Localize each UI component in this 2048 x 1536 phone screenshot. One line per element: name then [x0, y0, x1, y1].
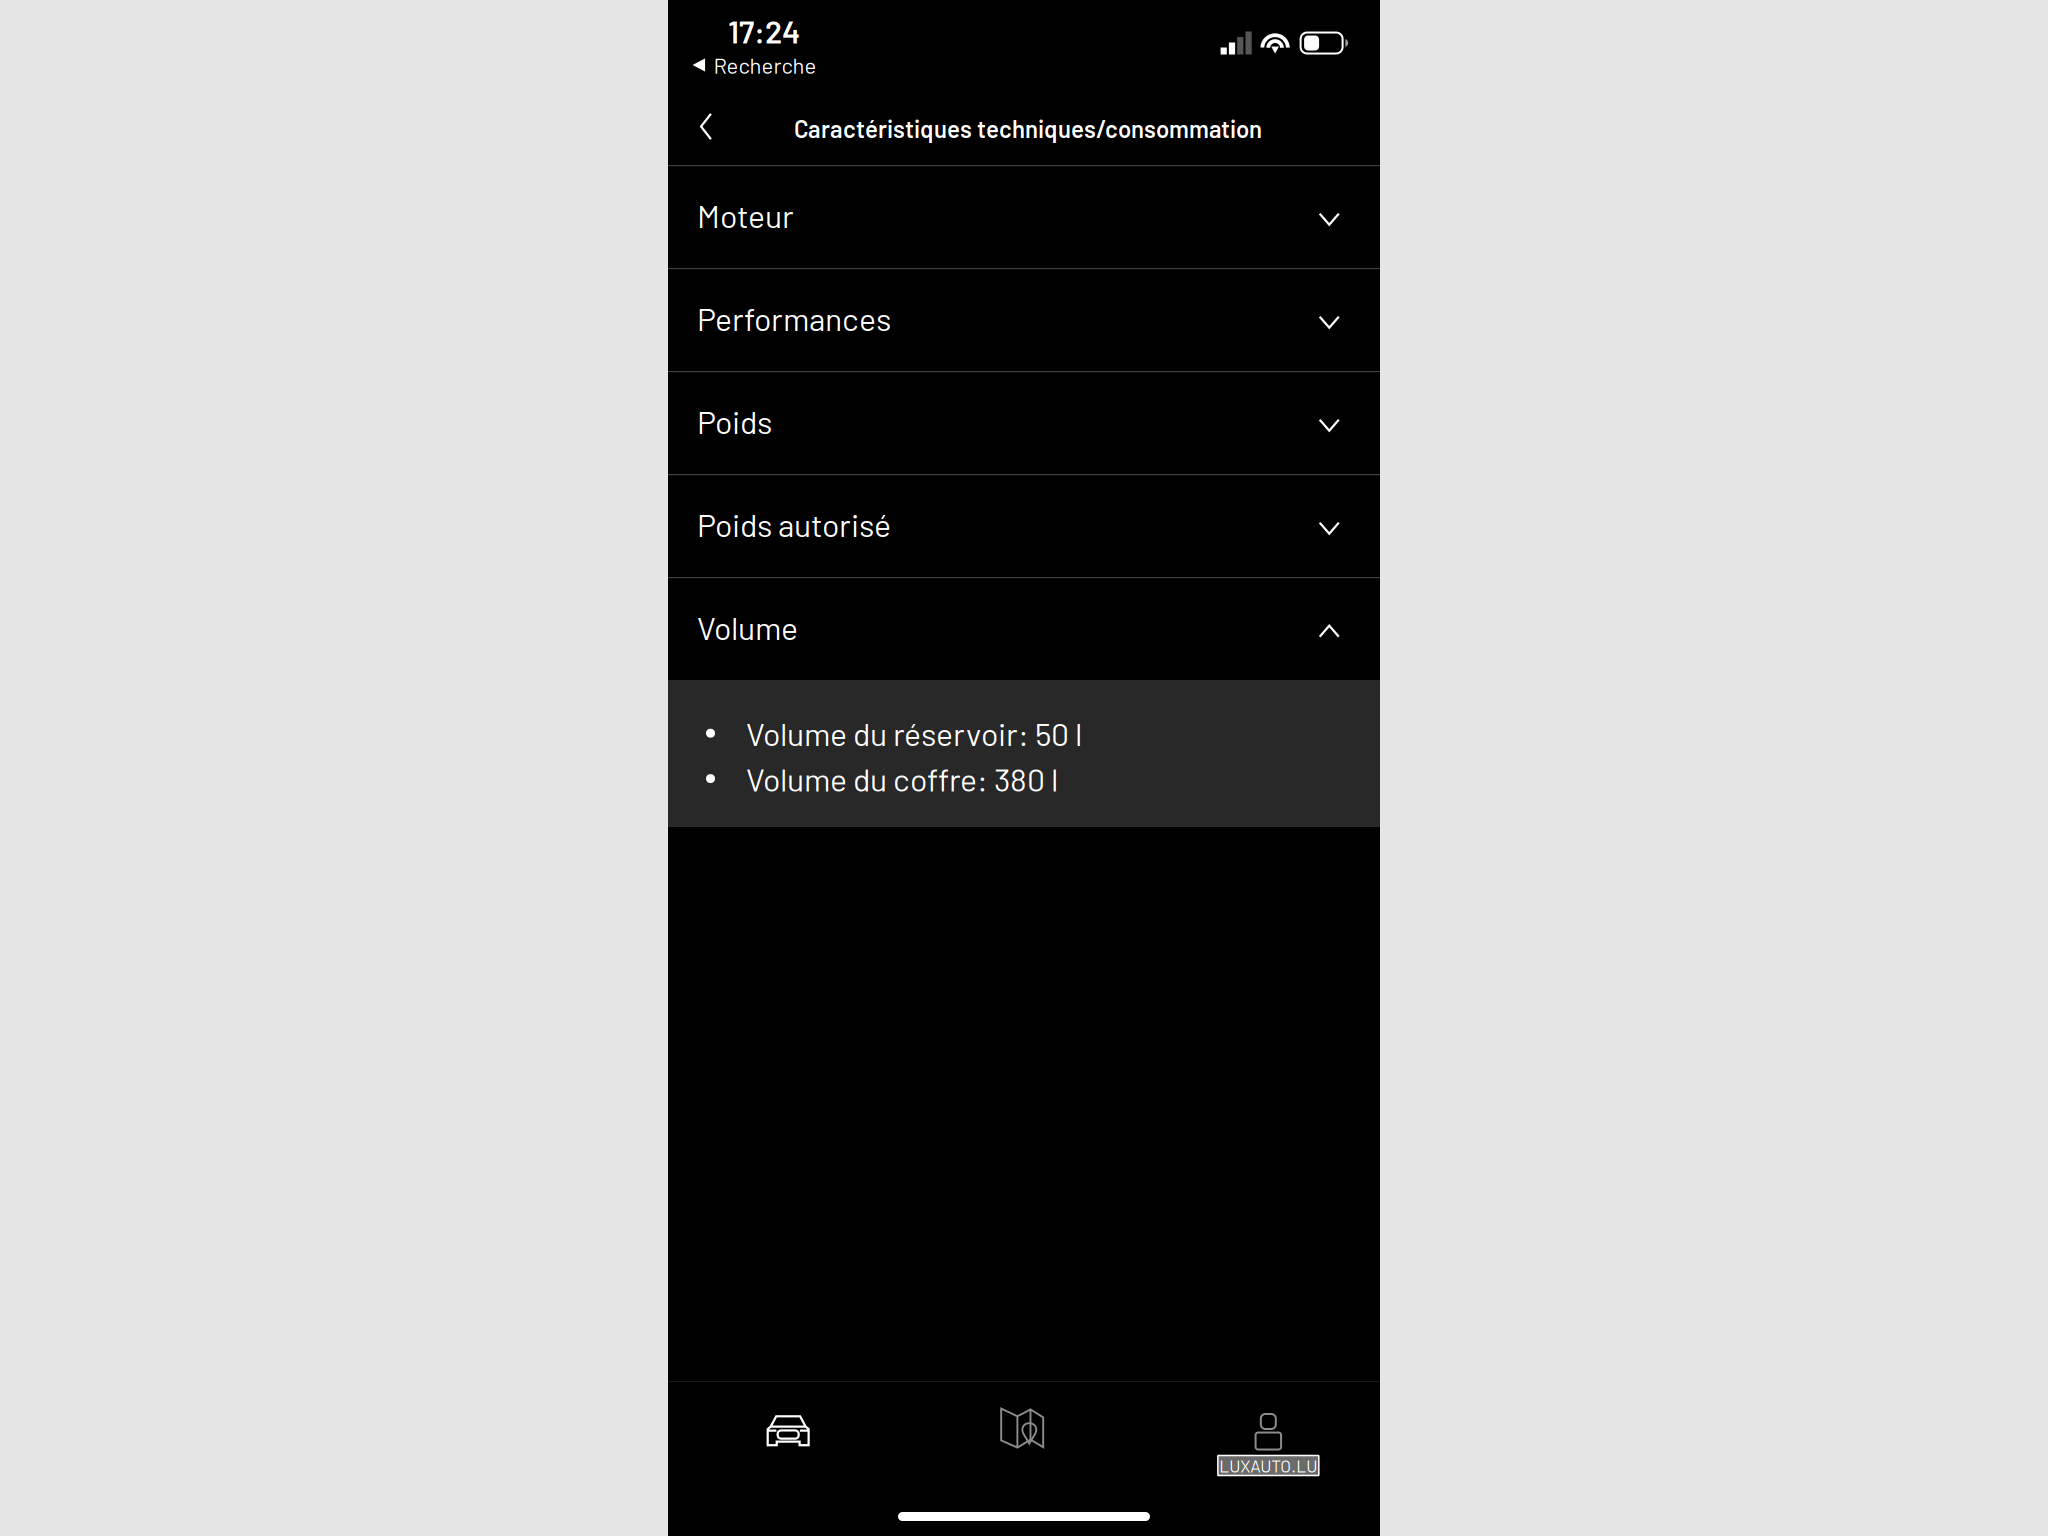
button[interactable]: Poids autorisé [668, 475, 1380, 577]
button[interactable]: Retour [679, 98, 733, 154]
staticText: Poids autorisé [697, 505, 891, 543]
staticText: 17:24 [728, 12, 800, 50]
button[interactable]: Véhicules [668, 1382, 905, 1536]
staticText: Performances [697, 299, 891, 337]
staticText: Caractéristiques techniques/consommation [794, 114, 1262, 143]
staticText: Poids [697, 402, 772, 440]
button[interactable]: Recherche [668, 52, 1380, 88]
button[interactable]: Volume [668, 578, 1380, 680]
staticText: Moteur [697, 196, 794, 234]
button[interactable]: Profil [1143, 1382, 1380, 1536]
staticText: Volume [697, 608, 798, 646]
staticText: Recherche [714, 52, 817, 78]
staticText: Volume du coffre: 380 l [746, 759, 1058, 798]
button[interactable]: Poids [668, 372, 1380, 474]
button[interactable]: Performances [668, 269, 1380, 371]
staticText: LUXAUTO.LU [1219, 1455, 1317, 1476]
button[interactable]: Moteur [668, 166, 1380, 268]
button[interactable]: Carte [905, 1382, 1143, 1536]
staticText: Volume du réservoir: 50 l [746, 714, 1082, 752]
